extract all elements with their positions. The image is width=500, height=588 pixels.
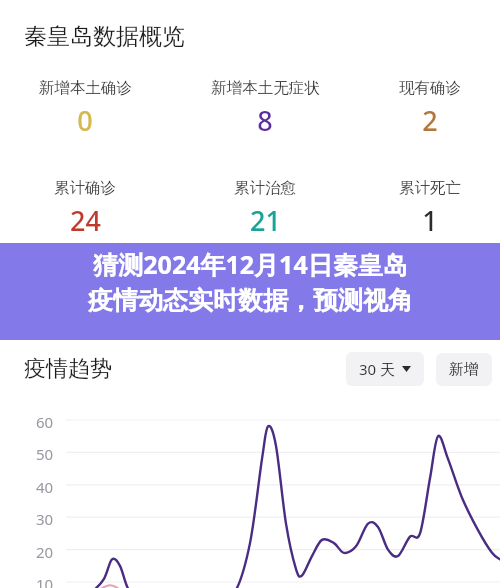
staticText: 猜测2024年12月14日秦皇岛 [93,247,408,281]
button[interactable]: 秦皇岛数据概览 [24,22,185,51]
staticText: 21 [250,202,281,239]
button[interactable]: 疫情趋势 [24,355,112,383]
staticText: 40 [36,477,54,497]
staticText: 60 [36,412,54,432]
button[interactable]: 30 天 [346,352,424,386]
staticText: 1 [422,202,438,239]
staticText: 现有确诊 [399,78,461,98]
button[interactable]: 新增本土无症状 [185,78,345,139]
button[interactable]: 累计确诊 [10,178,160,239]
staticText: 24 [70,202,101,239]
staticText: 2 [422,102,438,139]
staticText: 累计死亡 [399,178,461,198]
button[interactable]: 新增本土确诊 [10,78,160,139]
button[interactable]: 新增 [436,353,492,386]
button[interactable]: 累计死亡 [370,178,490,239]
staticText: 20 [36,542,54,562]
staticText: 新增 [449,360,479,379]
staticText: 累计治愈 [234,178,296,198]
staticText: 10 [36,574,54,588]
staticText: 疫情动态实时数据，预测视角 [88,285,413,316]
staticText: 50 [36,444,54,464]
staticText: 0 [77,102,93,139]
button[interactable]: 现有确诊 [370,78,490,139]
staticText: 累计确诊 [54,178,116,198]
staticText: 30 天 [359,359,396,379]
staticText: 30 [36,509,54,529]
staticText: 新增本土确诊：0 例 [26,270,159,290]
staticText: 新增本土无症状 [211,78,320,98]
staticText: 新增本土确诊 [39,78,132,98]
button[interactable]: 累计治愈 [185,178,345,239]
staticText: 8 [257,102,273,139]
